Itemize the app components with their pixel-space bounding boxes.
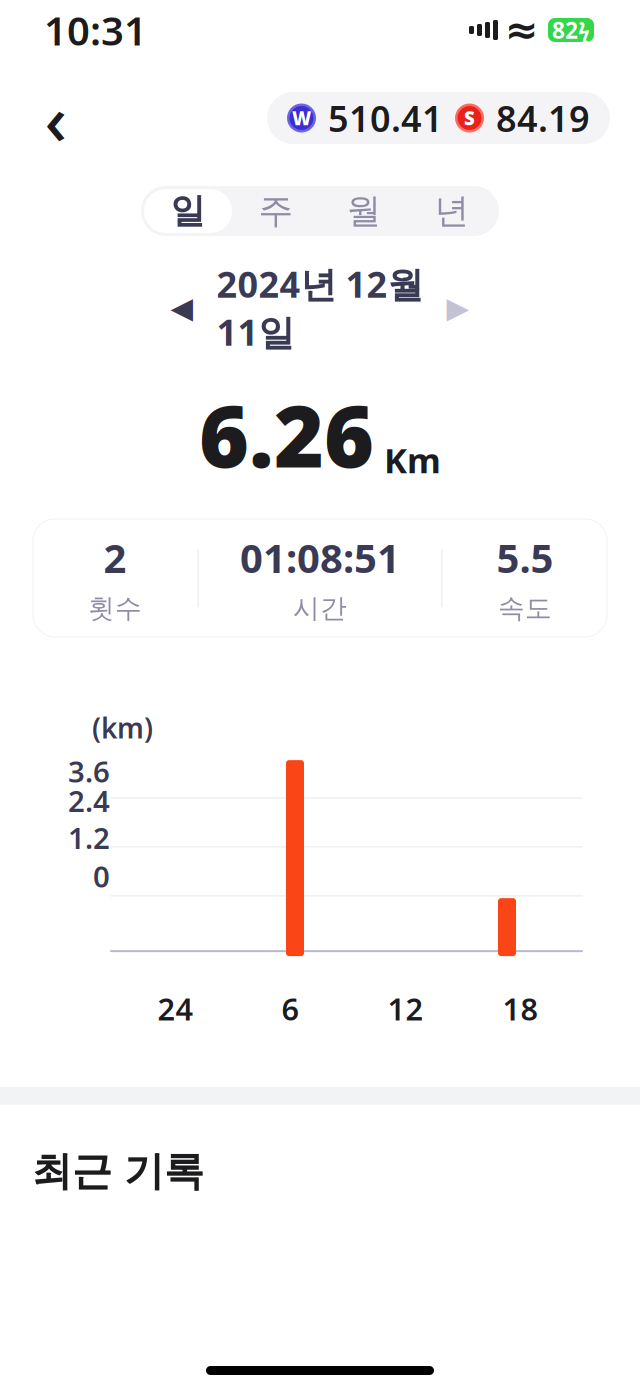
staticText: 10:31 <box>44 3 147 56</box>
staticText: Km <box>384 437 441 483</box>
staticText: 1.2 <box>68 818 110 857</box>
staticText: ‹ <box>44 72 67 164</box>
staticText: W <box>292 106 311 130</box>
staticText: 5.5 <box>496 531 553 584</box>
staticText: ▶ <box>446 291 469 324</box>
button[interactable]: 주 <box>232 189 320 233</box>
staticText: 18 <box>502 988 538 1029</box>
staticText: 시간 <box>293 592 347 625</box>
button[interactable]: Previous day <box>156 286 208 330</box>
staticText: (km) <box>92 709 153 746</box>
staticText: ≈ <box>505 7 539 53</box>
button[interactable]: 일 <box>144 189 232 233</box>
staticText: ϟ <box>578 16 590 44</box>
staticText: 일 <box>170 190 205 232</box>
staticText: 2024년 12월 11일 <box>216 260 423 356</box>
staticText: 주 <box>258 190 293 232</box>
staticText: 속도 <box>498 592 552 625</box>
staticText: 84.19 <box>496 94 590 142</box>
staticText: 2 <box>103 531 126 584</box>
button[interactable]: Back <box>30 90 82 146</box>
staticText: 12 <box>387 988 423 1029</box>
button[interactable]: Next day <box>432 286 484 330</box>
staticText: 년 <box>434 190 469 232</box>
staticText: 01:08:51 <box>240 531 400 584</box>
staticText: 6.26 <box>199 378 374 491</box>
staticText: ◀ <box>170 291 193 324</box>
button[interactable]: W <box>267 92 610 144</box>
staticText: 6 <box>281 988 299 1029</box>
staticText: 0 <box>93 857 110 896</box>
button[interactable]: 년 <box>408 189 496 233</box>
staticText: 월 <box>346 190 381 232</box>
staticText: 3.6 <box>68 752 110 791</box>
button[interactable]: 월 <box>320 189 408 233</box>
staticText: 최근 기록 <box>32 1147 204 1196</box>
staticText: S <box>464 106 475 130</box>
staticText: 510.41 <box>328 94 443 142</box>
staticText: 24 <box>157 988 193 1029</box>
staticText: 82 <box>552 15 578 45</box>
staticText: 횟수 <box>88 592 142 625</box>
staticText: 2.4 <box>68 781 110 820</box>
